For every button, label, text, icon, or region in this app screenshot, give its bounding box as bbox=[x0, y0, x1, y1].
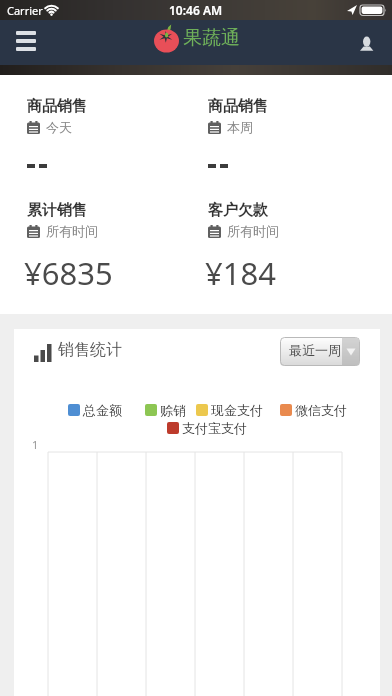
button[interactable]: 现金支付 bbox=[196, 402, 263, 418]
staticText: 1 bbox=[32, 437, 39, 452]
staticText: 10:46 AM bbox=[169, 2, 223, 18]
staticText: 现金支付 bbox=[211, 402, 263, 418]
staticText: 所有时间 bbox=[46, 223, 98, 239]
staticText: 商品销售 bbox=[27, 97, 87, 116]
button[interactable] bbox=[350, 27, 382, 59]
staticText: 果蔬通 bbox=[183, 26, 240, 50]
button[interactable]: 微信支付 bbox=[280, 402, 347, 418]
staticText: 客户欠款 bbox=[208, 201, 268, 220]
staticText: 支付宝支付 bbox=[182, 420, 247, 436]
button[interactable]: 最近一周 bbox=[280, 337, 360, 366]
staticText: 赊销 bbox=[160, 402, 186, 418]
button[interactable] bbox=[10, 25, 44, 59]
button[interactable]: 总金额 bbox=[68, 402, 122, 418]
staticText: 总金额 bbox=[83, 402, 122, 418]
staticText: 今天 bbox=[46, 119, 72, 135]
staticText: 所有时间 bbox=[227, 223, 279, 239]
staticText: ¥6835 bbox=[24, 252, 113, 294]
staticText: 销售统计 bbox=[58, 340, 122, 360]
button[interactable]: 赊销 bbox=[145, 402, 186, 418]
staticText: 微信支付 bbox=[295, 402, 347, 418]
staticText: 累计销售 bbox=[27, 201, 87, 220]
staticText: ¥184 bbox=[205, 252, 276, 294]
staticText: 本周 bbox=[227, 119, 253, 135]
staticText: Carrier bbox=[7, 3, 43, 18]
staticText: 最近一周 bbox=[289, 342, 341, 358]
button[interactable]: 支付宝支付 bbox=[167, 420, 247, 436]
staticText: 商品销售 bbox=[208, 97, 268, 116]
